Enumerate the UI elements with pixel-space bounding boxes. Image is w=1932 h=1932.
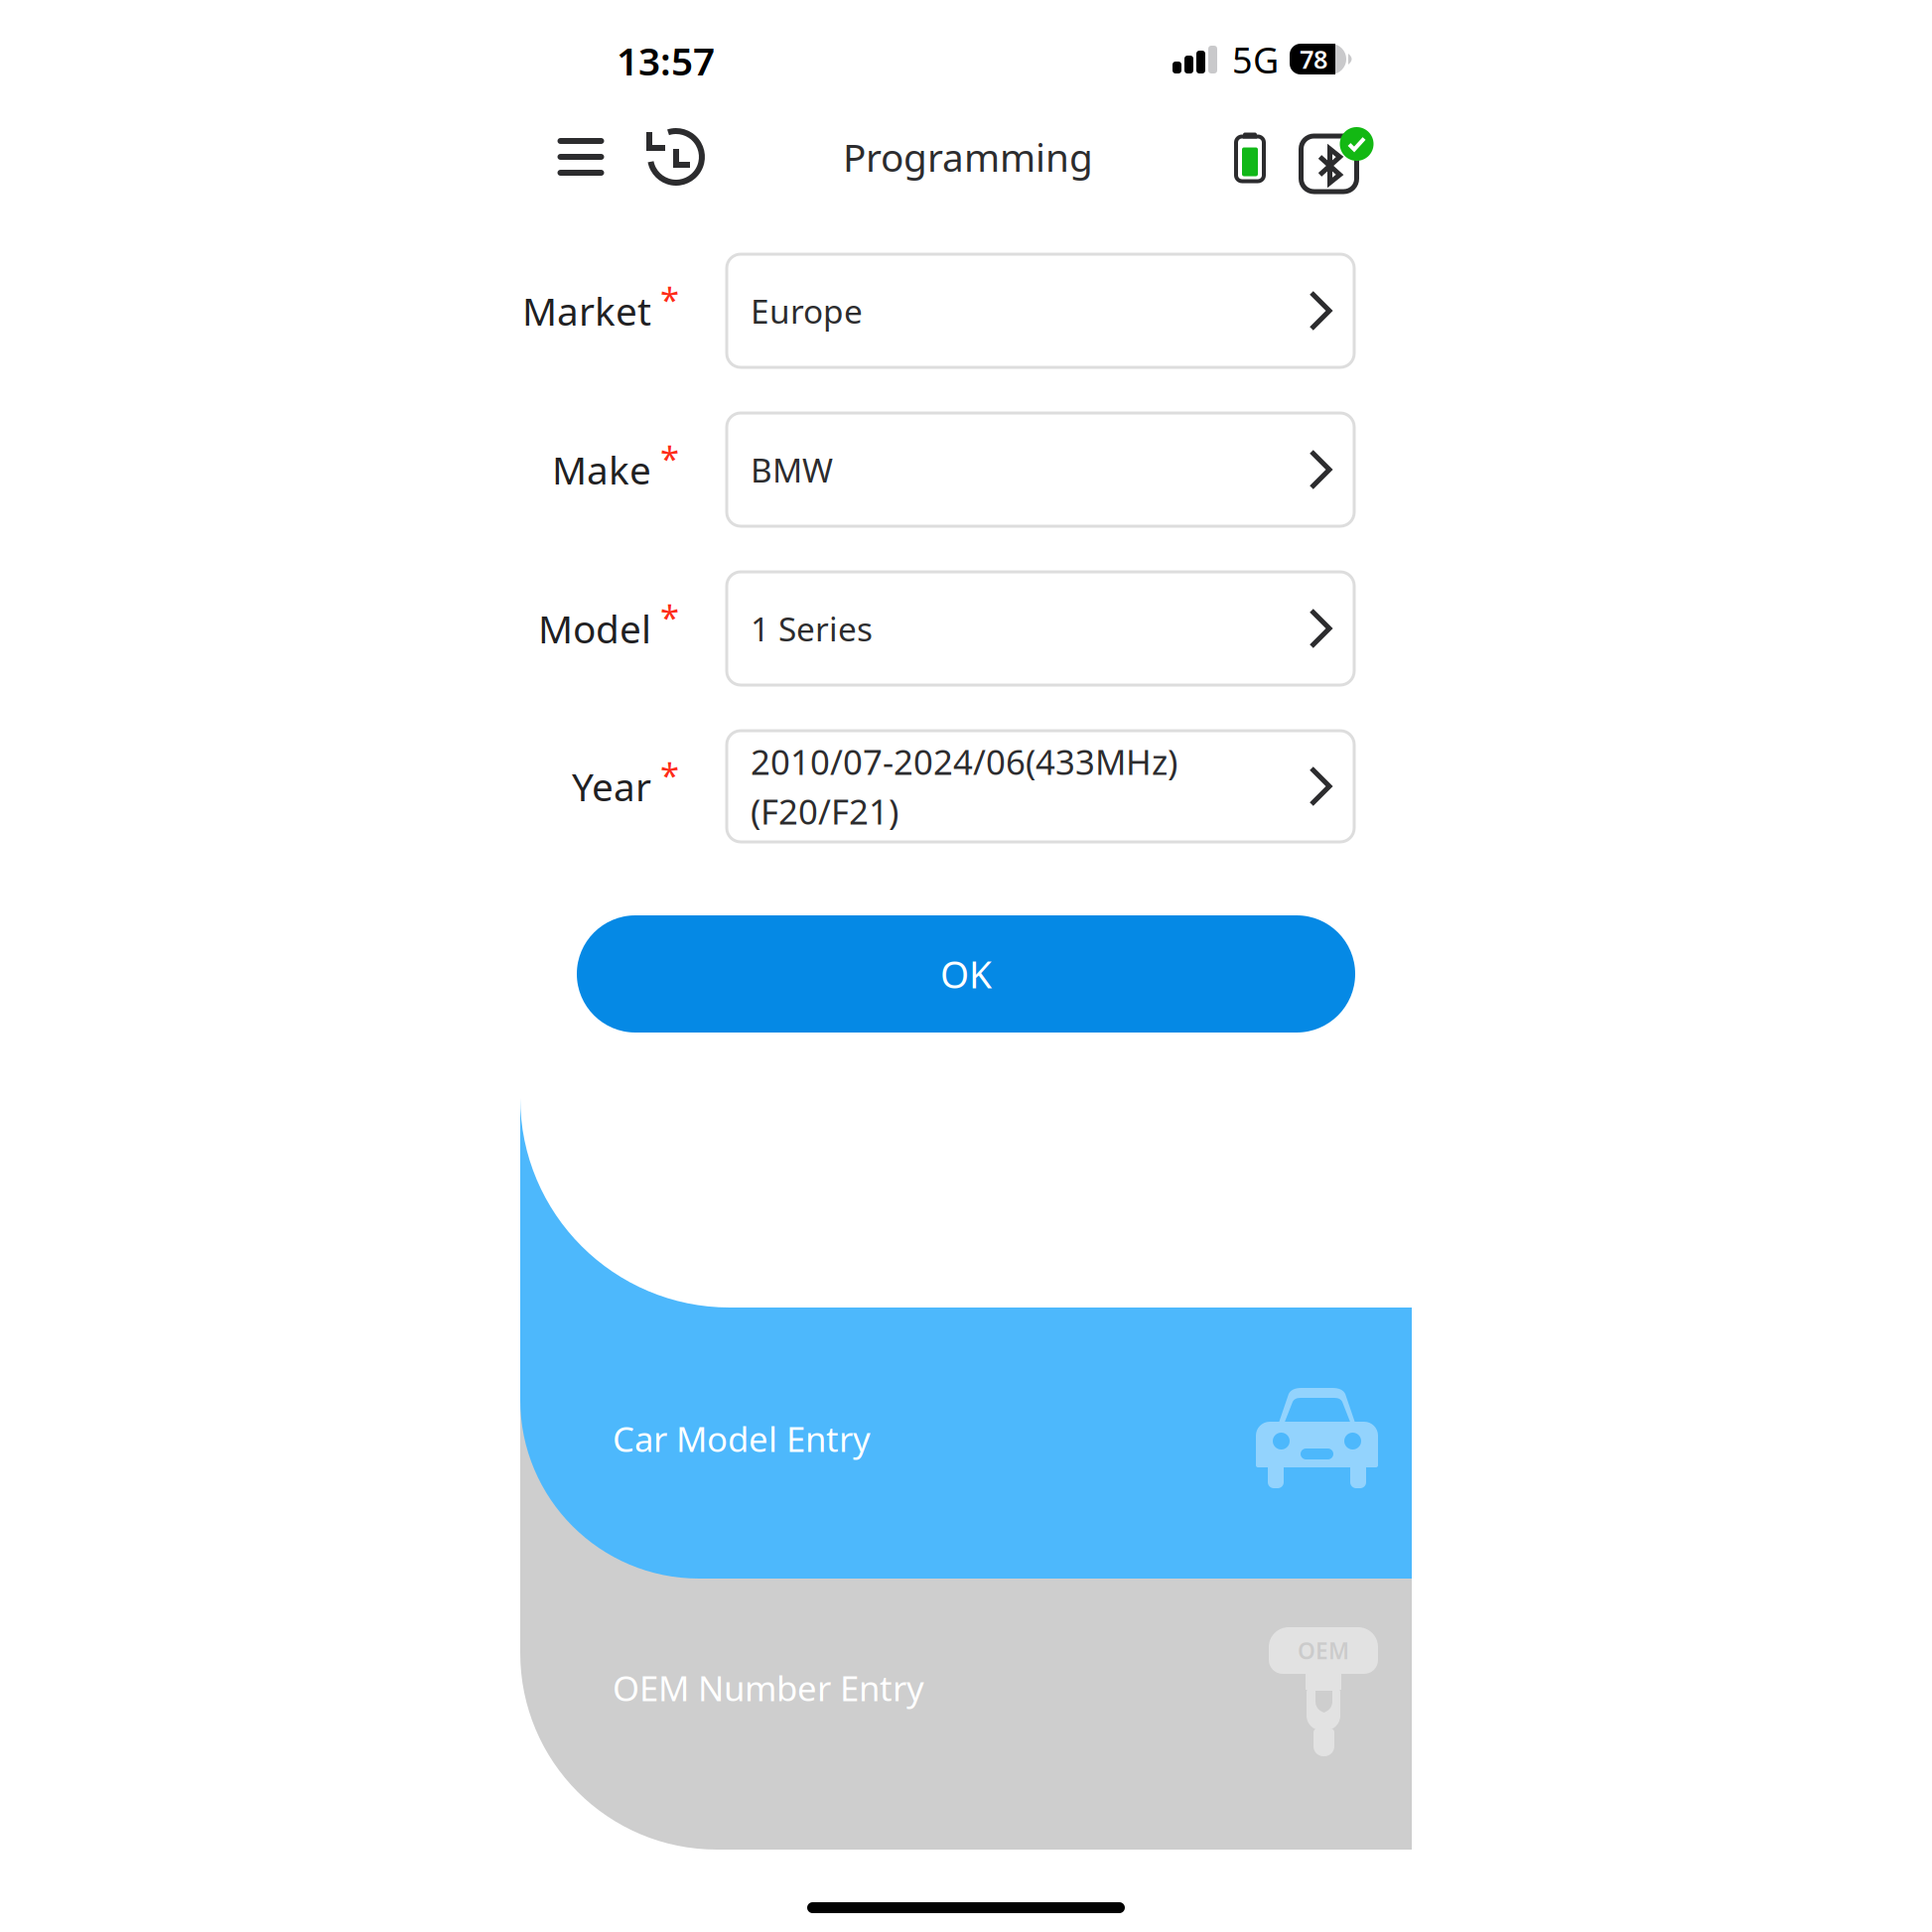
- staticText: *: [660, 435, 679, 481]
- button[interactable]: Menu: [544, 120, 618, 194]
- button[interactable]: Car Model Entry: [520, 1098, 1412, 1579]
- staticText: Make: [552, 444, 651, 495]
- button[interactable]: 2010/07-2024/06(433MHz): [727, 731, 1354, 842]
- staticText: (F20/F21): [751, 788, 898, 834]
- button[interactable]: Device battery: [1219, 120, 1281, 194]
- staticText: *: [660, 276, 679, 322]
- staticText: 1 Series: [751, 607, 873, 650]
- staticText: Car Model Entry: [613, 1416, 871, 1461]
- staticText: BMW: [751, 448, 833, 492]
- button[interactable]: Bluetooth connected: [1298, 121, 1371, 195]
- staticText: 13:57: [617, 35, 715, 86]
- staticText: *: [660, 594, 679, 640]
- button[interactable]: History: [639, 120, 713, 194]
- button[interactable]: 1 Series: [727, 572, 1354, 685]
- button[interactable]: OEM Number Entry: [520, 1369, 1412, 1850]
- button[interactable]: OK: [577, 915, 1355, 1033]
- staticText: Year: [572, 761, 651, 812]
- staticText: Market: [522, 285, 651, 336]
- staticText: OEM Number Entry: [613, 1665, 924, 1711]
- staticText: Model: [538, 603, 651, 654]
- button[interactable]: Europe: [727, 254, 1354, 367]
- staticText: OK: [940, 949, 992, 999]
- staticText: Programming: [843, 131, 1093, 182]
- staticText: Europe: [751, 289, 863, 333]
- staticText: *: [660, 752, 679, 798]
- button[interactable]: BMW: [727, 413, 1354, 526]
- staticText: 78: [1300, 42, 1327, 76]
- staticText: 2010/07-2024/06(433MHz): [751, 739, 1177, 784]
- staticText: 5G: [1232, 36, 1279, 83]
- staticText: OEM: [1298, 1636, 1349, 1665]
